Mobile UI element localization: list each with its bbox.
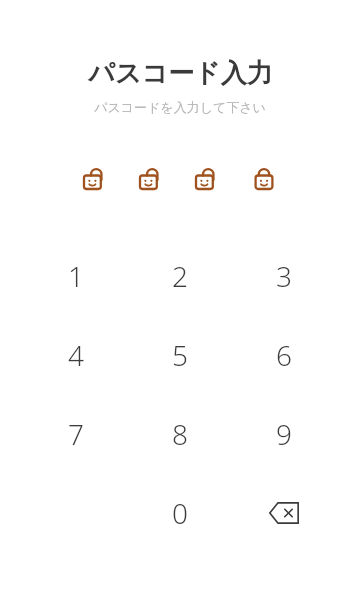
button[interactable]: Backspace <box>232 473 336 552</box>
button[interactable]: 5 <box>128 315 232 394</box>
button[interactable]: 0 <box>128 473 232 552</box>
other: Unlocked <box>84 159 108 189</box>
staticText: 7 <box>68 415 84 453</box>
button[interactable]: 6 <box>232 315 336 394</box>
button[interactable]: 2 <box>128 236 232 315</box>
staticText: 0 <box>172 494 188 532</box>
button[interactable]: 4 <box>24 315 128 394</box>
staticText: 9 <box>276 415 292 453</box>
staticText: 4 <box>68 336 84 374</box>
button[interactable]: 3 <box>232 236 336 315</box>
staticText: 6 <box>276 336 292 374</box>
staticText: 3 <box>276 257 292 295</box>
staticText: パスコードを入力して下さい <box>94 99 266 115</box>
staticText: パスコード入力 <box>88 57 273 90</box>
button[interactable]: 9 <box>232 394 336 473</box>
other: Locked <box>252 159 276 189</box>
staticText: 2 <box>172 257 188 295</box>
other: Unlocked <box>140 159 164 189</box>
staticText: 1 <box>68 257 84 295</box>
button[interactable]: 1 <box>24 236 128 315</box>
button[interactable]: 8 <box>128 394 232 473</box>
staticText: 8 <box>172 415 188 453</box>
other: Unlocked <box>196 159 220 189</box>
staticText: 5 <box>172 336 188 374</box>
button[interactable]: 7 <box>24 394 128 473</box>
